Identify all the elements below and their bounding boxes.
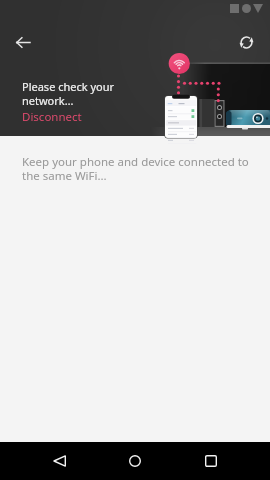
staticText: Please check your network… [22,79,115,109]
staticText: Keep your phone and device connected to … [22,154,249,184]
button[interactable]: Back [4,23,42,61]
button[interactable]: Refresh [227,23,265,61]
button[interactable]: Home [113,442,157,480]
button[interactable]: Recents [189,442,233,480]
staticText: Disconnect [22,109,82,125]
button[interactable]: Disconnect [22,109,82,125]
button[interactable]: Back [37,442,81,480]
